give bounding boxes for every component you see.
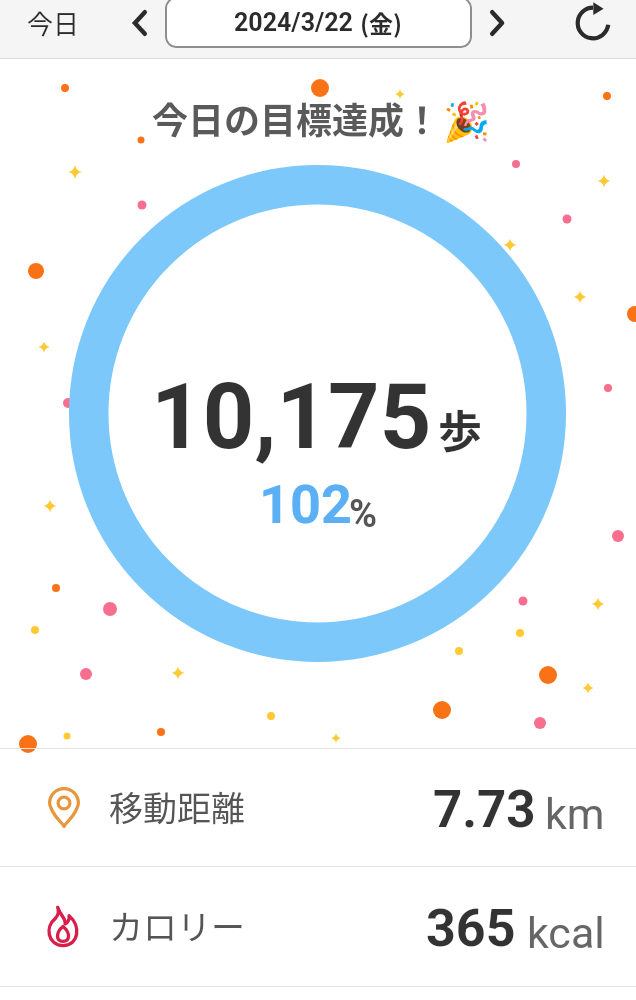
button[interactable]: 2024/3/22 — [165, 0, 472, 48]
staticText: 365 — [426, 898, 516, 959]
staticText: kcal — [527, 908, 605, 958]
button[interactable]: Next day — [474, 0, 520, 45]
staticText: 🎉 — [443, 100, 491, 145]
staticText: 102 — [259, 473, 352, 536]
button[interactable]: 今日 — [27, 0, 80, 45]
staticText: (金) — [360, 5, 403, 40]
staticText: km — [545, 789, 605, 839]
button[interactable]: 移動距離 — [0, 749, 636, 866]
staticText: 今日の目標達成！ — [152, 92, 441, 144]
staticText: 10,175 — [151, 365, 432, 470]
staticText: 歩 — [438, 397, 482, 461]
staticText: 7.73 — [433, 780, 536, 840]
staticText: 移動距離 — [109, 782, 245, 831]
button[interactable]: Previous day — [117, 0, 163, 45]
staticText: カロリー — [109, 901, 245, 950]
button[interactable]: Refresh — [568, 0, 618, 45]
button[interactable]: カロリー — [0, 867, 636, 986]
staticText: % — [349, 492, 378, 537]
staticText: 2024/3/22 — [234, 8, 360, 37]
staticText: 今日 — [27, 4, 80, 42]
